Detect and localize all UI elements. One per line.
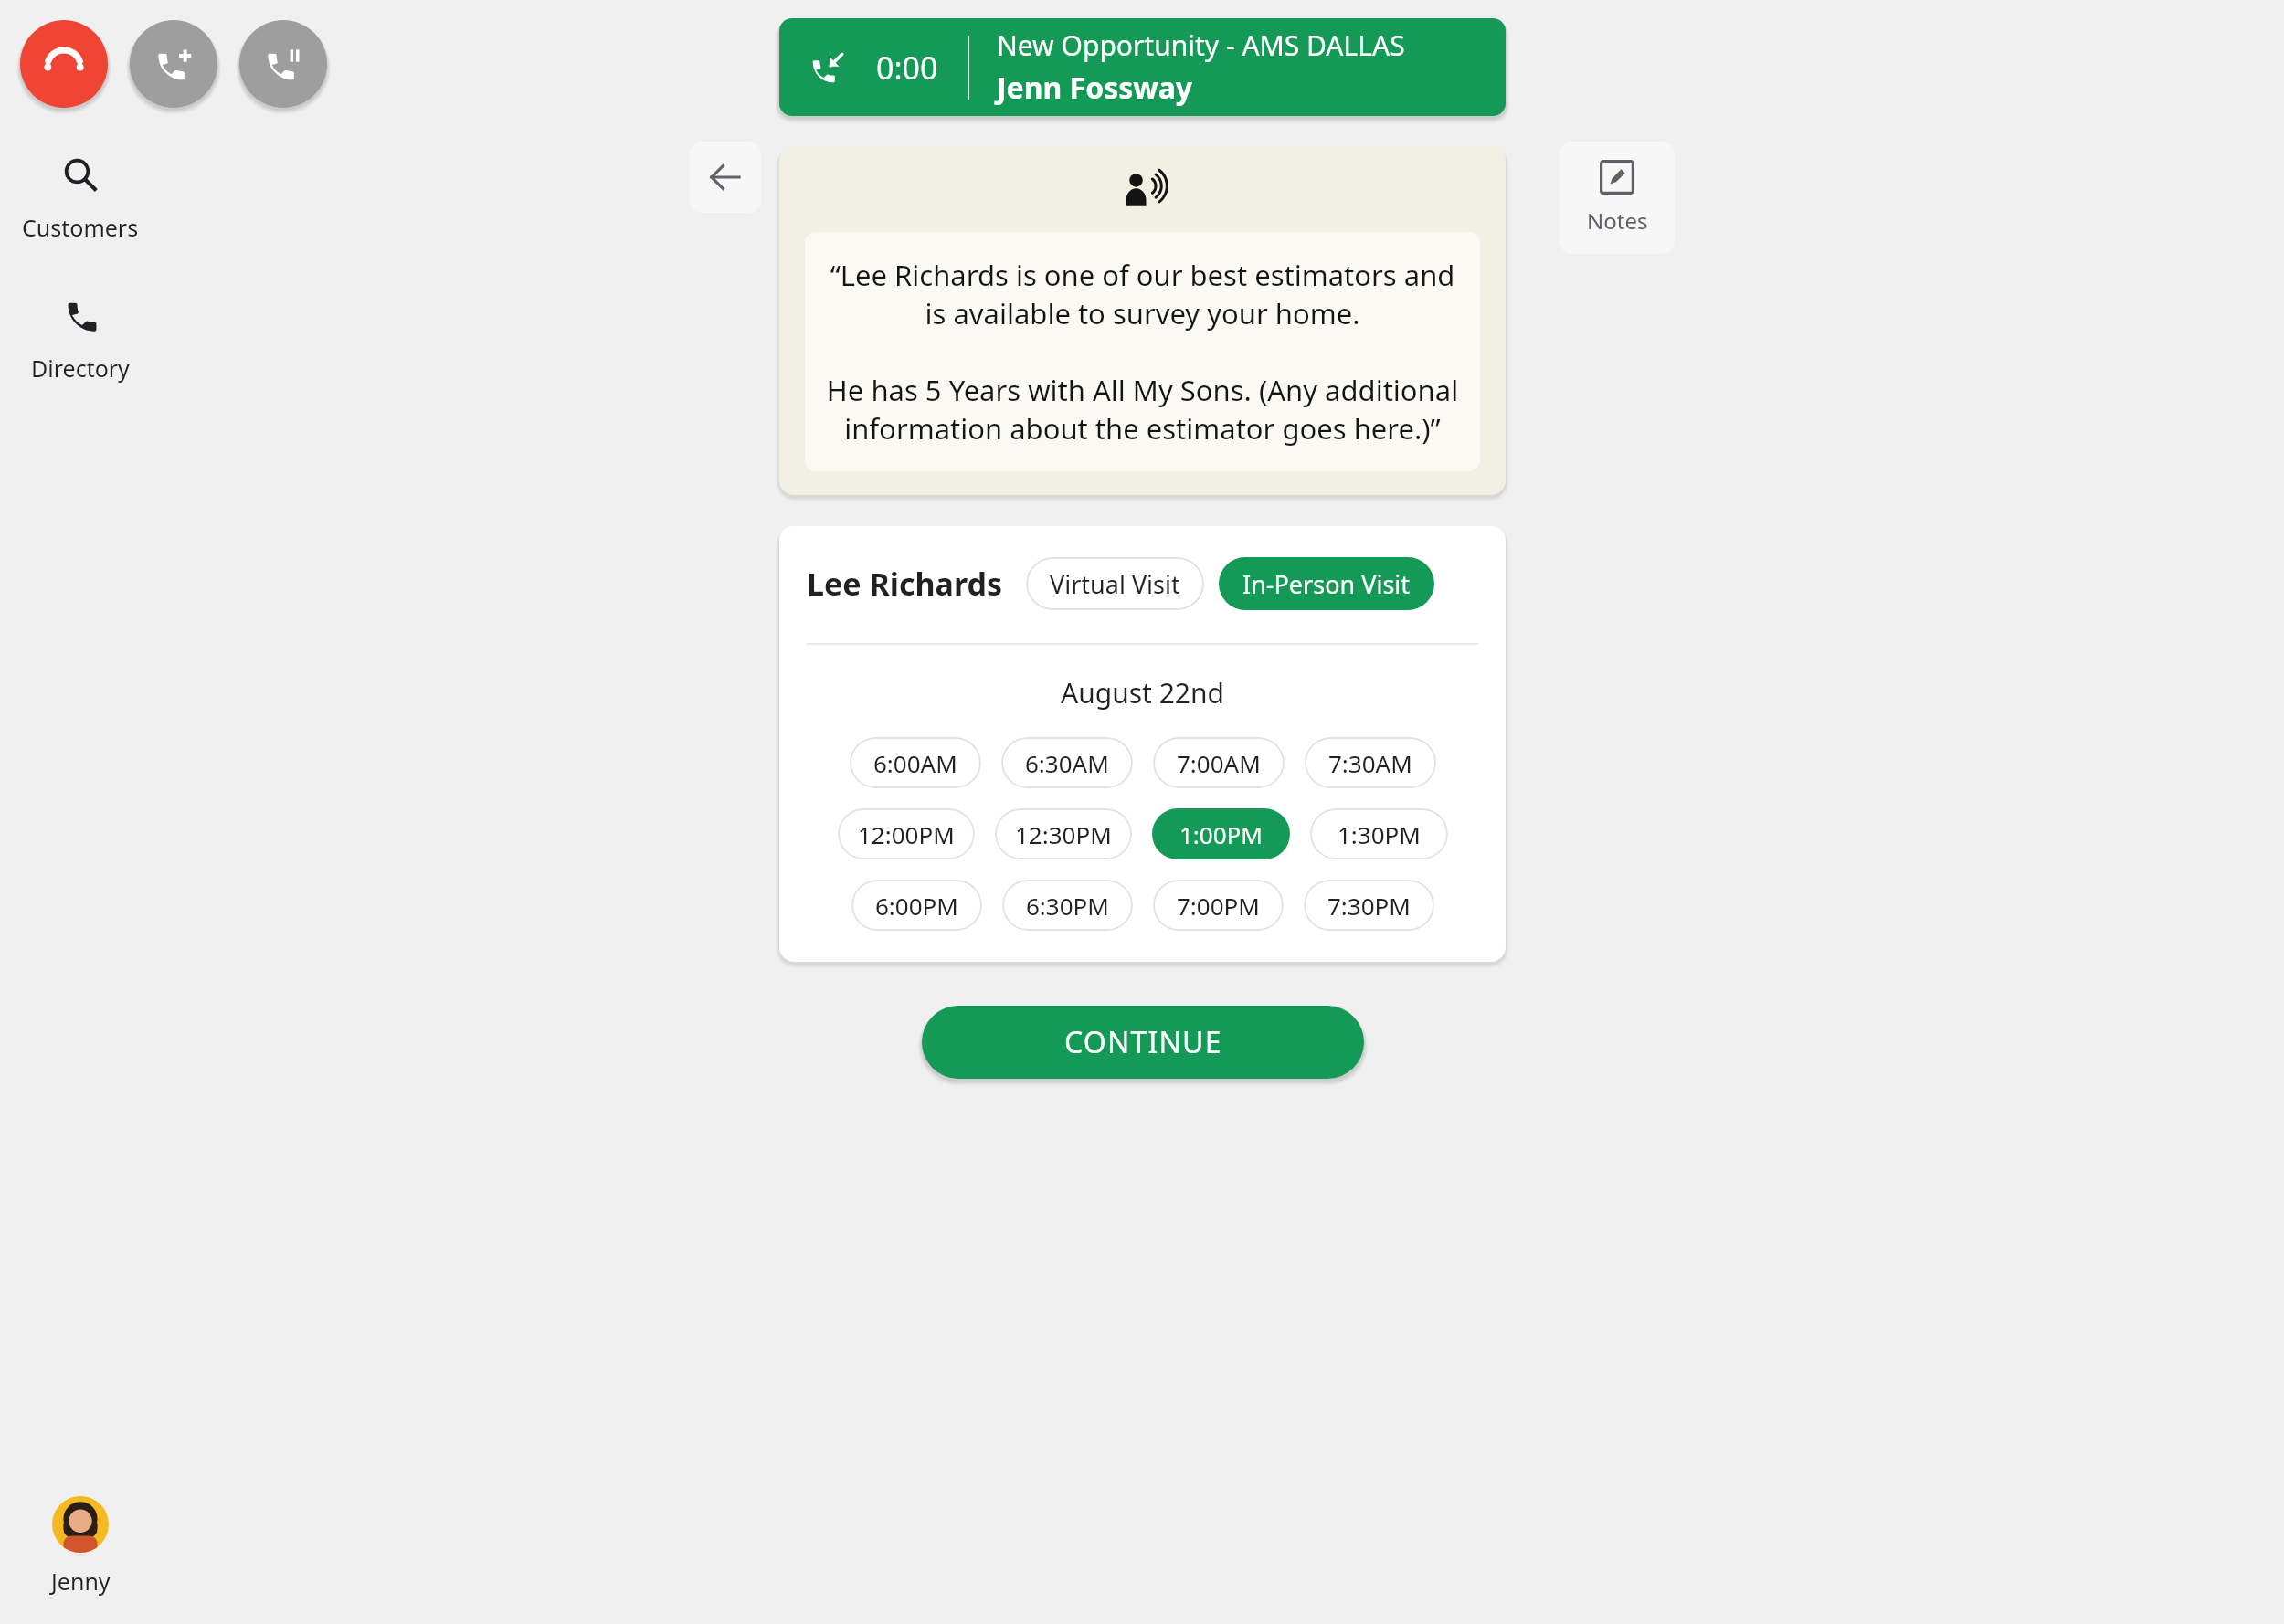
staticText: 12:30PM <box>1015 818 1112 850</box>
button[interactable]: 6:00AM <box>850 737 981 788</box>
staticText: In-Person Visit <box>1242 567 1411 601</box>
button[interactable]: Notes <box>1560 142 1675 254</box>
staticText: 7:00AM <box>1177 747 1261 779</box>
button[interactable]: 1:30PM <box>1310 808 1448 859</box>
staticText: 7:30AM <box>1328 747 1412 779</box>
button[interactable]: 7:00AM <box>1153 737 1285 788</box>
staticText: “Lee Richards is one of our best estimat… <box>825 256 1460 332</box>
staticText: 1:00PM <box>1179 818 1263 850</box>
staticText: Notes <box>1587 206 1648 236</box>
staticText: Virtual Visit <box>1050 567 1180 601</box>
button[interactable]: 12:00PM <box>838 808 975 859</box>
button[interactable]: 6:00PM <box>851 880 982 931</box>
staticText: Customers <box>22 212 139 243</box>
button[interactable]: 7:30AM <box>1305 737 1436 788</box>
staticText: 12:00PM <box>858 818 955 850</box>
button[interactable]: 12:30PM <box>995 808 1132 859</box>
button[interactable]: In-Person Visit <box>1219 557 1434 610</box>
staticText: August 22nd <box>1061 674 1225 712</box>
staticText: 1:30PM <box>1338 818 1421 850</box>
button[interactable]: 7:00PM <box>1153 880 1284 931</box>
button[interactable]: CONTINUE <box>922 1006 1364 1079</box>
button[interactable]: Back <box>690 142 761 213</box>
staticText: 6:00PM <box>875 890 958 922</box>
button[interactable]: Add call <box>130 20 217 108</box>
staticText: New Opportunity - AMS DALLAS <box>997 26 1405 64</box>
staticText: 0:00 <box>876 47 938 89</box>
staticText: CONTINUE <box>1064 1022 1222 1062</box>
button[interactable]: Directory <box>20 292 141 389</box>
staticText: 6:30PM <box>1026 890 1109 922</box>
staticText: 6:00AM <box>873 747 957 779</box>
button[interactable]: 0:00 <box>779 18 1506 116</box>
button[interactable]: 7:30PM <box>1304 880 1434 931</box>
button[interactable]: 1:00PM <box>1152 808 1290 859</box>
button[interactable]: 6:30PM <box>1002 880 1133 931</box>
button[interactable]: Hold call <box>239 20 327 108</box>
staticText: 6:30AM <box>1025 747 1109 779</box>
staticText: Jenn Fossway <box>997 68 1193 108</box>
staticText: Jenny <box>51 1566 111 1597</box>
button[interactable]: Customers <box>20 150 141 248</box>
button[interactable]: End call <box>20 20 108 108</box>
button[interactable]: Virtual Visit <box>1026 557 1204 610</box>
staticText: 7:30PM <box>1327 890 1411 922</box>
button[interactable]: Jenny <box>20 1496 141 1597</box>
staticText: He has 5 Years with All My Sons. (Any ad… <box>825 371 1460 448</box>
staticText: Directory <box>31 353 130 384</box>
button[interactable]: 6:30AM <box>1001 737 1133 788</box>
staticText: 7:00PM <box>1177 890 1260 922</box>
staticText: Lee Richards <box>807 563 1002 605</box>
